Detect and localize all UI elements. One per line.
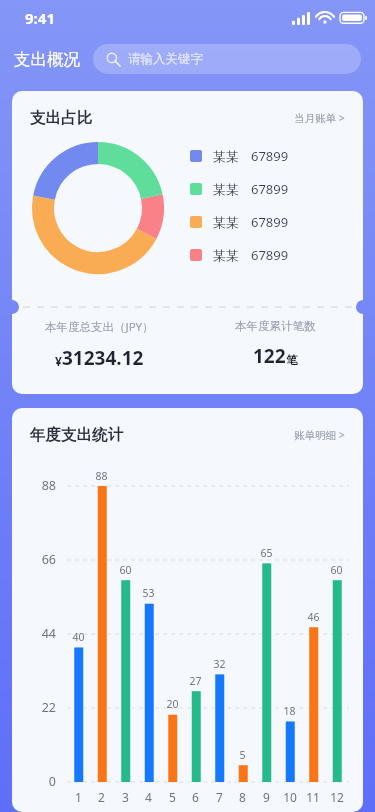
button[interactable]: Search bbox=[93, 44, 361, 74]
staticText: ¥ bbox=[55, 353, 62, 369]
button[interactable]: 本年度总支出（JPY） bbox=[12, 319, 187, 371]
staticText: 5 bbox=[169, 789, 176, 805]
staticText: 支出概况 bbox=[14, 49, 80, 70]
staticText: 请输入关键字 bbox=[128, 51, 203, 67]
staticText: 0 bbox=[48, 773, 56, 790]
other: Search bbox=[106, 52, 120, 66]
staticText: 53 bbox=[142, 586, 155, 600]
staticText: 40 bbox=[72, 630, 85, 644]
button[interactable]: 账单明细 > bbox=[290, 424, 349, 446]
staticText: 3 bbox=[122, 789, 129, 805]
staticText: 当月账单 > bbox=[294, 111, 345, 125]
staticText: 31234.12 bbox=[62, 345, 144, 371]
staticText: 7 bbox=[216, 789, 223, 805]
staticText: 46 bbox=[307, 610, 320, 624]
staticText: 年度支出统计 bbox=[30, 425, 123, 445]
staticText: 5 bbox=[239, 748, 246, 762]
button[interactable]: 某某 bbox=[190, 180, 295, 198]
staticText: 20 bbox=[166, 697, 179, 711]
staticText: 本年度总支出（JPY） bbox=[45, 319, 154, 335]
staticText: 60 bbox=[330, 563, 343, 577]
staticText: 66 bbox=[41, 551, 56, 568]
staticText: 某某 bbox=[213, 181, 251, 197]
staticText: 27 bbox=[189, 674, 202, 688]
button[interactable]: 本年度累计笔数 bbox=[187, 319, 363, 369]
staticText: 67899 bbox=[251, 180, 289, 198]
staticText: 某某 bbox=[213, 247, 251, 263]
staticText: 某某 bbox=[213, 148, 251, 164]
staticText: 某某 bbox=[213, 214, 251, 230]
staticText: 122 bbox=[253, 343, 286, 369]
staticText: 67899 bbox=[251, 147, 289, 165]
staticText: 12 bbox=[330, 789, 344, 805]
button[interactable]: 当月账单 > bbox=[290, 107, 349, 129]
staticText: 账单明细 > bbox=[294, 428, 345, 442]
staticText: 9 bbox=[263, 789, 270, 805]
staticText: 67899 bbox=[251, 213, 289, 231]
staticText: 1 bbox=[75, 789, 82, 805]
staticText: 60 bbox=[119, 563, 132, 577]
staticText: 本年度累计笔数 bbox=[235, 319, 316, 333]
staticText: 8 bbox=[239, 789, 246, 805]
button[interactable]: 某某 bbox=[190, 213, 295, 231]
staticText: 支出占比 bbox=[30, 108, 92, 128]
staticText: 2 bbox=[98, 789, 105, 805]
staticText: 32 bbox=[213, 657, 226, 671]
staticText: 10 bbox=[283, 789, 297, 805]
staticText: 笔 bbox=[286, 353, 298, 367]
staticText: 44 bbox=[41, 625, 56, 642]
staticText: 88 bbox=[95, 469, 108, 483]
staticText: 67899 bbox=[251, 246, 289, 264]
staticText: 22 bbox=[41, 699, 56, 716]
staticText: 11 bbox=[306, 789, 320, 805]
button[interactable]: 某某 bbox=[190, 147, 295, 165]
staticText: 9:41 bbox=[25, 8, 55, 28]
staticText: 88 bbox=[41, 477, 56, 494]
staticText: 18 bbox=[283, 704, 296, 718]
button[interactable]: 某某 bbox=[190, 246, 295, 264]
staticText: 6 bbox=[192, 789, 199, 805]
staticText: 4 bbox=[145, 789, 152, 805]
staticText: 65 bbox=[260, 546, 273, 560]
